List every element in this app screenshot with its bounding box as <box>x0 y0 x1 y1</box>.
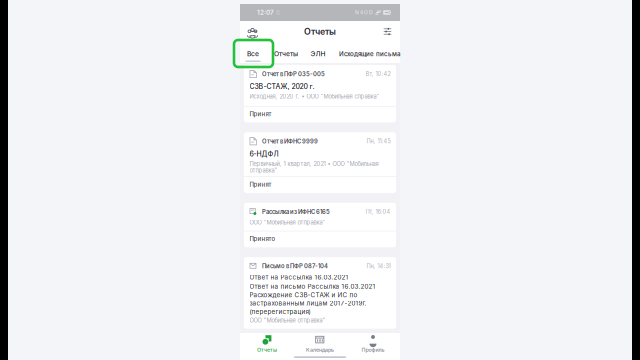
staticText: Расхождение СЗВ-СТАЖ и ИС по <box>249 291 357 299</box>
staticText: Принят <box>249 110 271 118</box>
button[interactable]: Все <box>240 42 266 63</box>
staticText: Исходящие письма <box>339 50 401 58</box>
staticText: ЭЛН <box>310 50 325 58</box>
button[interactable]: Отчет в ИФНС 9999 <box>244 132 396 193</box>
staticText: Отчеты <box>274 50 298 58</box>
staticText: Первичный, 1 квартал, 2021 • ООО "Мобиль… <box>249 160 378 167</box>
staticText: Пн, 14:31 <box>366 263 390 269</box>
button[interactable]: Организации <box>240 21 265 42</box>
staticText: Календарь <box>306 347 334 353</box>
staticText: Ответ на Рассылка 16.03.2021 <box>249 273 348 281</box>
staticText: застрахованным лицам 2017-2019г. <box>249 299 366 307</box>
button[interactable]: Отчеты <box>270 42 302 63</box>
button[interactable]: Календарь <box>293 334 346 354</box>
staticText: ООО "Мобильная отправка" <box>249 219 325 226</box>
staticText: Пн, 11:45 <box>366 138 390 145</box>
staticText: (перерегистрация) <box>249 308 310 315</box>
button[interactable]: Письмо в ПФР 087-104 <box>244 257 396 329</box>
staticText: Принят <box>249 181 271 188</box>
staticText: Профиль <box>361 347 384 353</box>
staticText: Отчеты <box>257 347 277 353</box>
staticText: Отчет в ИФНС 9999 <box>262 138 318 145</box>
button[interactable]: Отчет в ПФР 035-005 <box>244 65 396 122</box>
staticText: 6-НДФЛ <box>249 150 278 158</box>
button[interactable]: Рассылка из ИФНС 6165 <box>244 203 396 247</box>
staticText: Принято <box>249 235 275 243</box>
staticText: отправка" <box>249 167 277 174</box>
staticText: Письмо в ПФР 087-104 <box>262 263 328 270</box>
button[interactable]: Настройки списка <box>375 21 400 42</box>
staticText: СЗВ-СТАЖ, 2020 г. <box>249 82 314 91</box>
button[interactable]: ЭЛН <box>305 42 331 63</box>
button[interactable]: Отчеты <box>240 334 293 354</box>
staticText: Рассылка из ИФНС 6165 <box>262 208 330 215</box>
staticText: Отчеты <box>304 26 336 37</box>
staticText: N 4 O D <box>355 9 373 15</box>
button[interactable]: Профиль <box>346 334 399 354</box>
staticText: Отчет в ПФР 035-005 <box>262 70 325 78</box>
staticText: Исходная, 2020 г. • ООО "Мобильная справ… <box>249 93 379 100</box>
staticText: Ответ на письмо Рассылка 16.03.2021 <box>249 283 375 290</box>
staticText: Вт, 10:42 <box>365 71 390 77</box>
staticText: Все <box>247 50 259 58</box>
staticText: ООО "Мобильная отправка" <box>249 317 325 324</box>
staticText: Пт, 16:04 <box>365 208 390 215</box>
staticText: C <box>276 9 280 16</box>
button[interactable]: Исходящие письма <box>339 42 409 63</box>
staticText: 12:07 <box>257 9 274 16</box>
